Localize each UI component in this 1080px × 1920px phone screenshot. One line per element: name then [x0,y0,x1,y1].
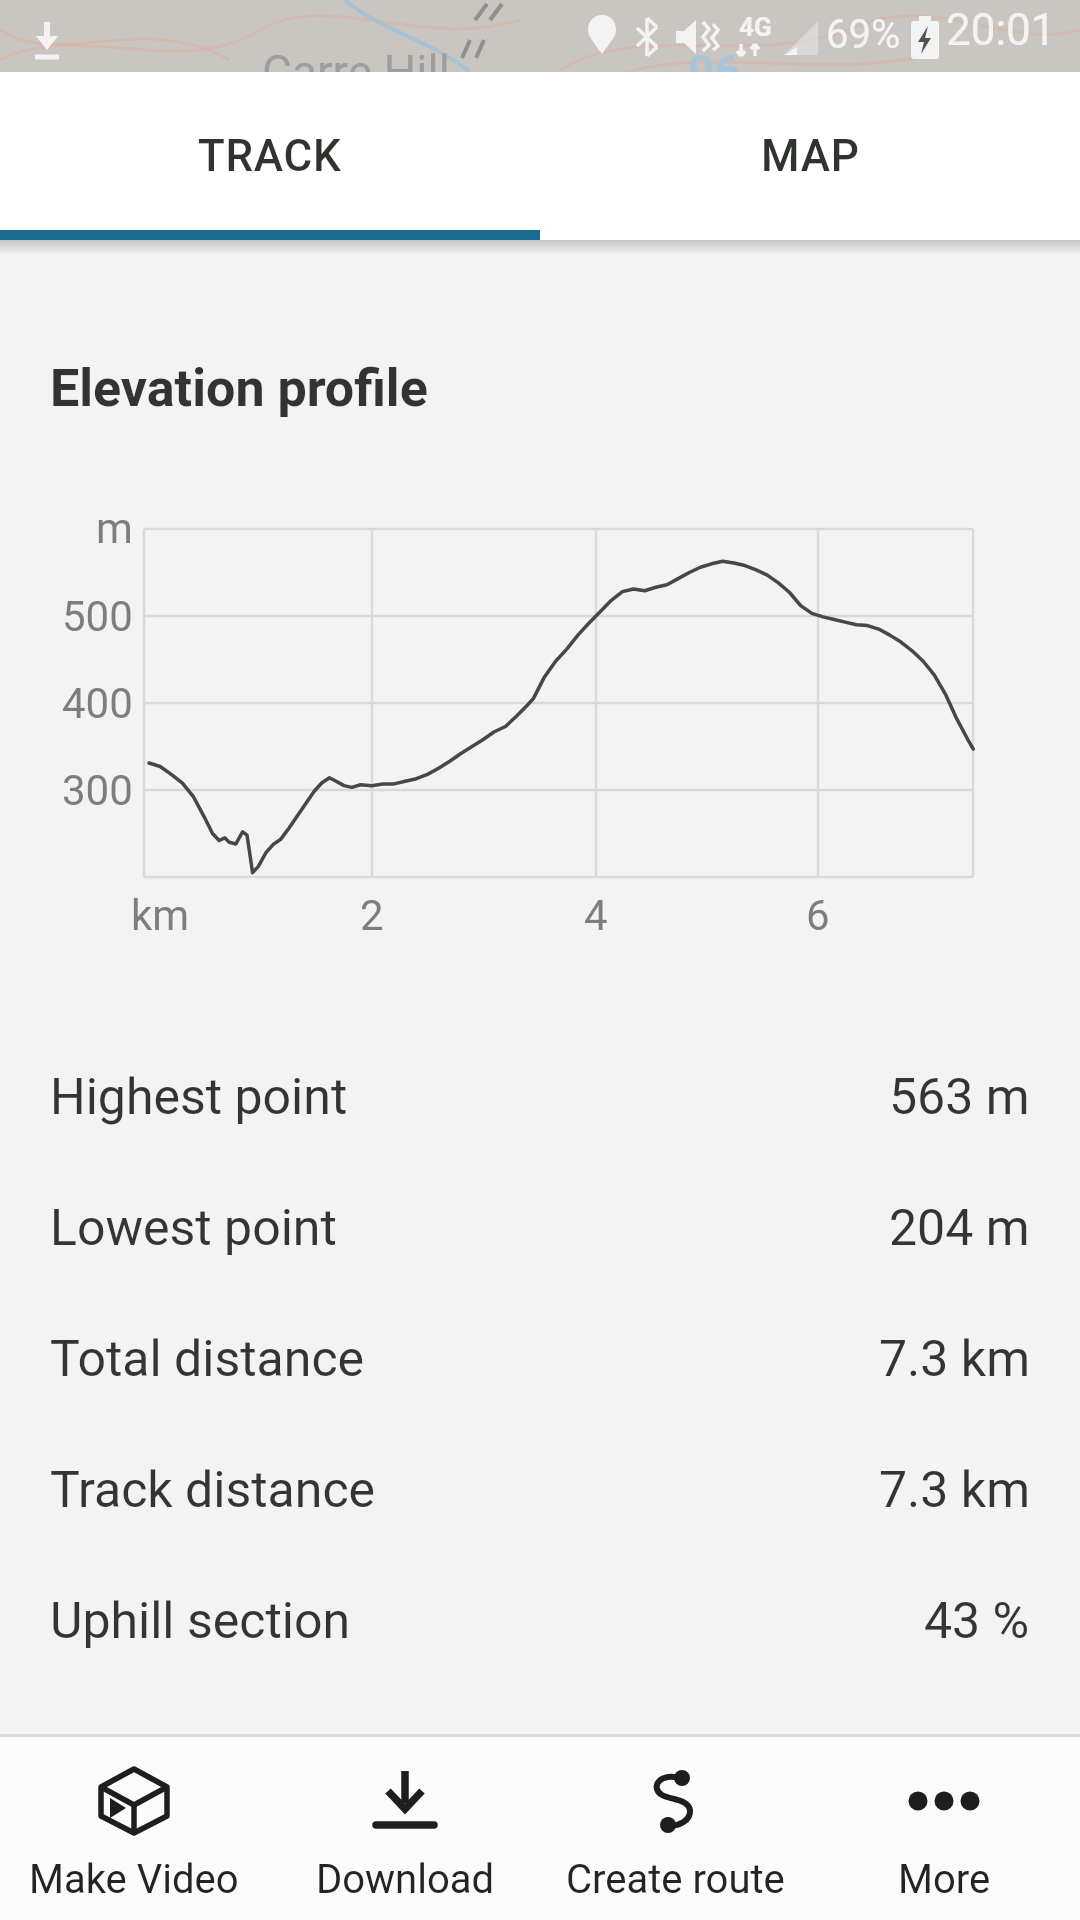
staticText: 20:01 [946,4,1056,56]
staticText: 500 [62,592,133,641]
staticText: 300 [62,766,133,815]
staticText: Create route [566,1856,785,1903]
staticText: Total distance [50,1330,365,1389]
staticText: 7.3 km [879,1330,1030,1389]
staticText: 563 m [889,1068,1030,1127]
staticText: Track distance [50,1461,376,1520]
button[interactable]: MAP [540,72,1080,240]
staticText: 6 [806,891,830,940]
staticText: 69% [826,11,901,58]
staticText: m [96,504,133,553]
button[interactable]: Make Video [4,1745,264,1915]
staticText: Lowest point [50,1199,337,1258]
staticText: 96 [688,45,741,72]
staticText: 2 [360,891,384,940]
staticText: 400 [62,679,133,728]
button[interactable]: TRACK [0,72,540,240]
staticText: Make Video [29,1856,239,1903]
button[interactable]: Download [275,1745,535,1915]
staticText: TRACK [198,130,342,182]
button[interactable]: Create route [545,1745,805,1915]
staticText: Highest point [50,1068,348,1127]
staticText: 4G [739,12,772,42]
staticText: Carre Hill [262,45,450,72]
button[interactable]: More [814,1745,1074,1915]
staticText: km [131,891,190,940]
staticText: 7.3 km [879,1461,1030,1520]
staticText: 4 [584,891,608,940]
staticText: MAP [761,130,860,182]
staticText: More [898,1856,991,1903]
staticText: 204 m [889,1199,1030,1258]
staticText: 43 % [924,1592,1030,1651]
staticText: Download [316,1856,495,1903]
staticText: Elevation profile [50,358,428,419]
staticText: Uphill section [50,1592,351,1651]
